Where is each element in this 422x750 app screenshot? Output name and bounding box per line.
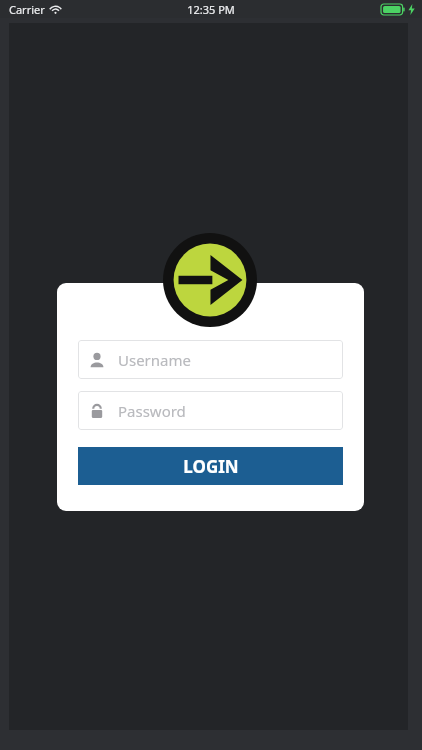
staticText: Username <box>118 350 191 370</box>
button[interactable]: Password <box>78 391 343 430</box>
staticText: Carrier <box>9 2 45 17</box>
staticText: Password <box>118 401 186 421</box>
button[interactable]: Username <box>78 340 343 379</box>
other: App logo <box>163 233 257 327</box>
button[interactable]: LOGIN <box>78 447 343 485</box>
staticText: LOGIN <box>183 455 239 478</box>
staticText: 12:35 PM <box>187 2 235 17</box>
